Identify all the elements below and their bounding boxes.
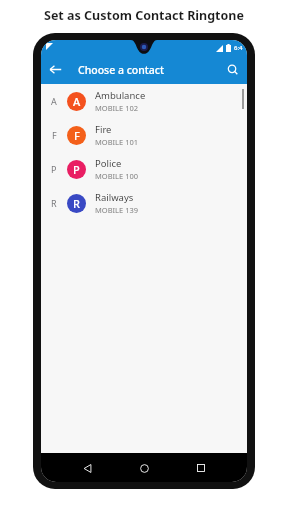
staticText: Railways [95,191,134,204]
staticText: Ambulance [95,89,146,102]
staticText: 6:4 [234,44,243,52]
button[interactable]: Home [133,457,155,479]
staticText: MOBILE 102 [95,103,138,113]
button[interactable]: F [41,118,247,152]
staticText: F [52,129,57,141]
staticText: A [51,95,57,107]
staticText: A [73,94,81,109]
button[interactable]: Recent apps [190,457,212,479]
staticText: P [73,162,80,177]
staticText: Choose a contact [78,63,165,77]
staticText: R [73,196,80,211]
staticText: MOBILE 139 [95,205,138,215]
button[interactable]: Back [41,55,70,84]
button[interactable]: Search [218,55,247,84]
staticText: F [74,128,80,143]
button[interactable]: P [41,152,247,186]
staticText: Police [95,157,122,170]
button[interactable]: Back [76,457,98,479]
staticText: MOBILE 100 [95,171,138,181]
staticText: R [51,197,57,209]
button[interactable]: A [41,84,247,118]
staticText: MOBILE 101 [95,137,138,147]
staticText: P [51,163,57,175]
staticText: Fire [95,123,112,136]
staticText: Set as Custom Contact Ringtone [44,7,244,24]
button[interactable]: R [41,186,247,220]
